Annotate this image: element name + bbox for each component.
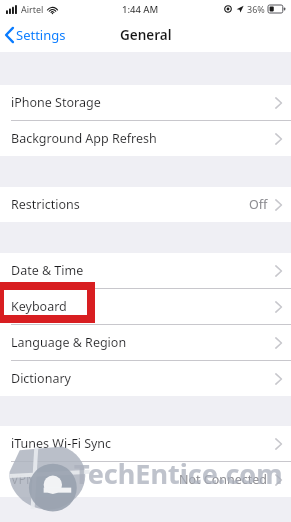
staticText: 1:44 AM: [122, 3, 159, 16]
button[interactable]: Settings: [0, 18, 74, 52]
button[interactable]: iPhone Storage: [0, 85, 291, 120]
staticText: Background App Refresh: [11, 130, 157, 147]
button[interactable]: Restrictions: [0, 187, 291, 222]
staticText: TechEntice.com: [74, 455, 283, 492]
staticText: Off: [249, 196, 268, 213]
staticText: Not Connected: [179, 471, 268, 488]
button[interactable]: Date & Time: [0, 253, 291, 288]
staticText: iTunes Wi-Fi Sync: [11, 435, 112, 452]
staticText: General: [120, 26, 172, 44]
staticText: Settings: [16, 26, 66, 44]
button[interactable]: Keyboard: [0, 289, 291, 324]
button[interactable]: Language & Region: [0, 325, 291, 360]
staticText: Date & Time: [11, 262, 84, 279]
button[interactable]: VPN: [0, 462, 291, 497]
staticText: iPhone Storage: [11, 94, 101, 111]
staticText: Restrictions: [11, 196, 80, 213]
button[interactable]: iTunes Wi-Fi Sync: [0, 426, 291, 461]
staticText: Airtel: [21, 3, 44, 15]
staticText: VPN: [11, 471, 36, 488]
staticText: Language & Region: [11, 334, 127, 351]
staticText: 36%: [247, 3, 265, 15]
staticText: Dictionary: [11, 370, 71, 387]
button[interactable]: Background App Refresh: [0, 121, 291, 156]
button[interactable]: Dictionary: [0, 361, 291, 396]
staticText: Keyboard: [11, 298, 67, 315]
